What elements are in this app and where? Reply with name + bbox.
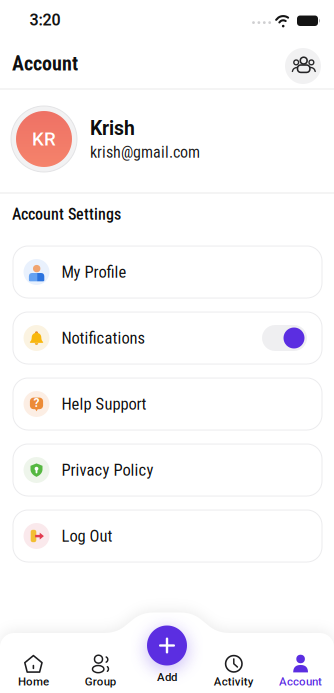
staticText: 3:20: [29, 11, 60, 29]
button[interactable]: Account: [279, 653, 322, 688]
button[interactable]: Notifications: [262, 325, 307, 351]
staticText: Help Support: [61, 394, 146, 414]
staticText: Account: [279, 675, 322, 688]
staticText: KR: [32, 128, 56, 150]
button[interactable]: Add: [147, 625, 187, 665]
staticText: Log Out: [61, 526, 112, 546]
button[interactable]: Group: [85, 653, 116, 688]
button[interactable]: Groups: [285, 48, 321, 84]
staticText: Notifications: [61, 328, 145, 348]
button[interactable]: Home: [18, 653, 49, 688]
staticText: Privacy Policy: [61, 460, 153, 480]
button[interactable]: Activity: [214, 653, 254, 688]
button[interactable]: Privacy Policy: [13, 444, 322, 496]
button[interactable]: Notifications: [13, 312, 322, 364]
staticText: Home: [18, 675, 49, 688]
staticText: ?: [33, 396, 39, 410]
staticText: Activity: [214, 675, 254, 688]
staticText: Account Settings: [12, 205, 121, 224]
button[interactable]: Log Out: [13, 510, 322, 562]
staticText: Account: [12, 52, 78, 75]
staticText: Add: [157, 670, 177, 684]
staticText: Krish: [90, 117, 135, 140]
staticText: krish@gmail.com: [90, 143, 200, 162]
staticText: Group: [85, 675, 116, 688]
button[interactable]: ?: [13, 378, 322, 430]
staticText: My Profile: [61, 262, 126, 282]
button[interactable]: My Profile: [13, 246, 322, 298]
